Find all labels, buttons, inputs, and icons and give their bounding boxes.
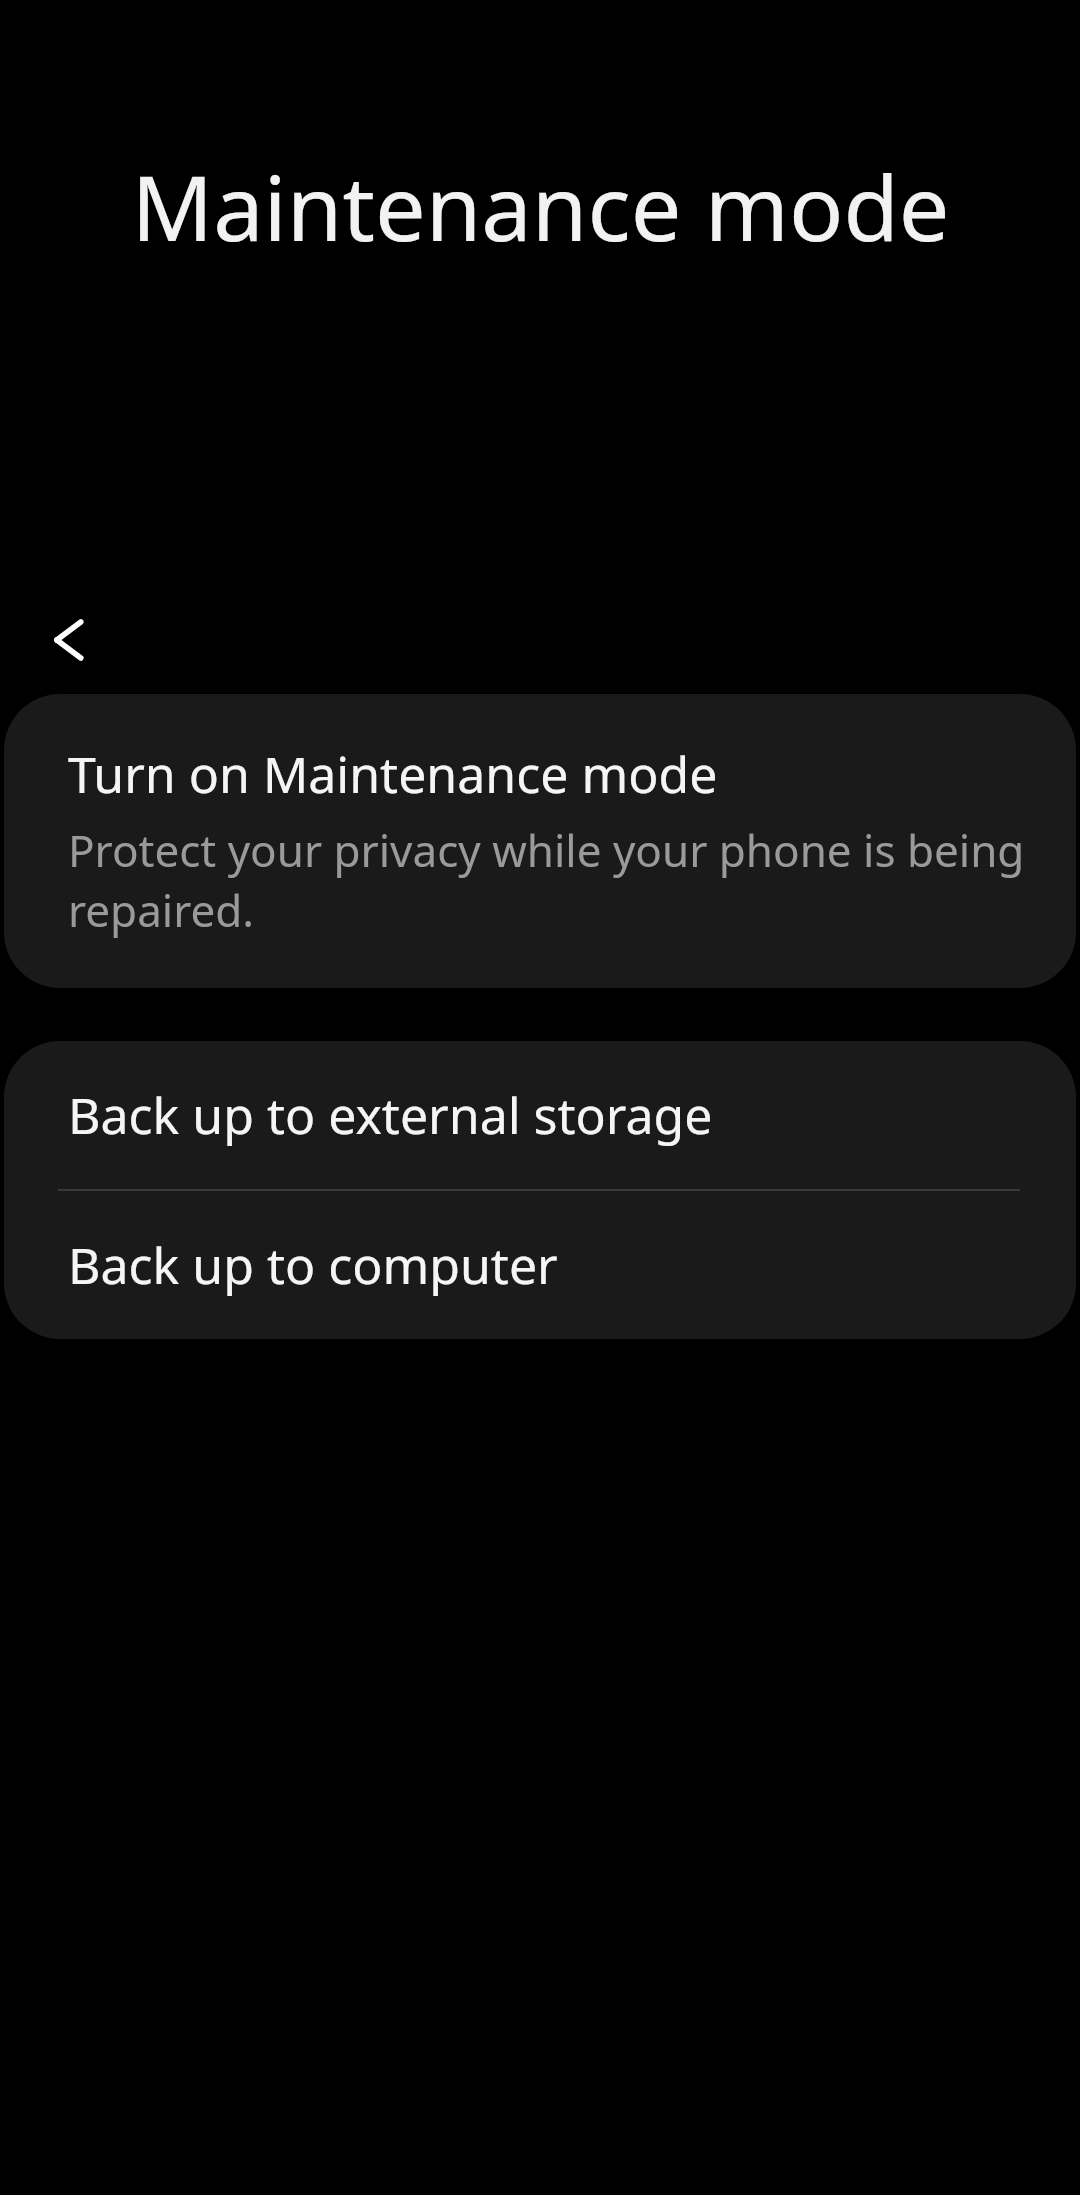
staticText: Back up to computer: [68, 1231, 558, 1299]
button[interactable]: Turn on Maintenance mode: [4, 694, 1076, 988]
staticText: Protect your privacy while your phone is…: [68, 820, 1036, 940]
button[interactable]: Back: [28, 592, 124, 688]
button[interactable]: Back up to external storage: [4, 1041, 1076, 1189]
staticText: Turn on Maintenance mode: [68, 740, 718, 808]
staticText: Back up to external storage: [68, 1081, 713, 1149]
staticText: Maintenance mode: [131, 145, 950, 268]
button[interactable]: Back up to computer: [4, 1191, 1076, 1339]
